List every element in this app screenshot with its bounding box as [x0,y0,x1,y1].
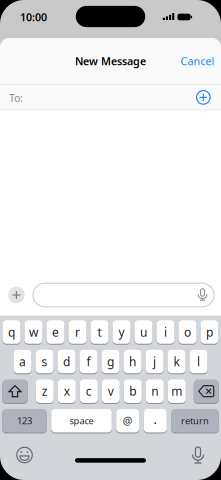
staticText: u [140,324,147,340]
button[interactable]: @ [116,408,139,433]
button[interactable]: y [112,320,130,344]
button[interactable]: a [13,349,31,374]
staticText: s [41,353,47,369]
button[interactable]: p [200,320,218,344]
button[interactable]: r [68,320,86,344]
button[interactable]: v [102,379,120,403]
button[interactable]: s [35,349,53,374]
button[interactable]: e [46,320,64,344]
button[interactable]: Cancel [180,54,214,68]
button[interactable]: i [156,320,174,344]
button[interactable]: Apps [8,286,25,303]
button[interactable]: k [167,349,185,374]
staticText: c [86,383,92,399]
button[interactable]: c [80,379,98,403]
button[interactable]: d [57,349,75,374]
staticText: f [86,353,90,369]
staticText: return [181,414,209,427]
staticText: v [108,383,114,399]
staticText: i [164,324,167,340]
staticText: h [129,353,136,369]
staticText: r [75,324,80,340]
button[interactable]: x [58,379,76,403]
button[interactable]: b [124,379,142,403]
button[interactable]: n [146,379,164,403]
button[interactable]: Add contact [196,90,211,105]
button[interactable]: return [171,408,219,433]
button[interactable]: q [2,320,20,344]
button[interactable]: Shift [2,379,28,403]
staticText: k [173,353,179,369]
button[interactable]: j [145,349,163,374]
button[interactable]: 123 [2,408,47,433]
button[interactable]: f [79,349,97,374]
staticText: Cancel [180,54,214,68]
button[interactable]: t [90,320,108,344]
button[interactable]: l [189,349,207,374]
staticText: l [197,353,200,369]
staticText: j [153,353,156,369]
staticText: New Message [75,54,146,68]
button[interactable]: z [36,379,54,403]
button[interactable]: Period [144,408,167,433]
staticText: w [29,324,38,340]
button[interactable]: m [168,379,186,403]
staticText: space [69,414,93,427]
staticText: t [97,324,101,340]
staticText: a [19,353,26,369]
button[interactable]: Emoji [16,446,33,463]
staticText: z [42,383,48,399]
button[interactable]: w [24,320,42,344]
staticText: y [118,324,124,340]
button[interactable]: g [101,349,119,374]
staticText: g [107,353,114,369]
staticText: b [129,383,136,399]
staticText: To: [9,91,23,105]
staticText: d [63,353,70,369]
staticText: p [206,324,213,340]
button[interactable]: o [178,320,196,344]
button[interactable]: space [51,408,112,433]
button[interactable]: Delete [194,379,219,403]
staticText: n [151,383,158,399]
staticText: e [52,324,59,340]
staticText: x [64,383,70,399]
button[interactable]: h [123,349,141,374]
button[interactable]: Message text field [33,283,214,307]
staticText: m [171,383,182,399]
staticText: 10:00 [20,10,47,24]
staticText: q [8,324,15,340]
staticText: o [184,324,191,340]
staticText: 123 [17,414,32,427]
button[interactable]: u [134,320,152,344]
staticText: @ [123,414,133,428]
button[interactable]: Dictate [190,446,205,465]
